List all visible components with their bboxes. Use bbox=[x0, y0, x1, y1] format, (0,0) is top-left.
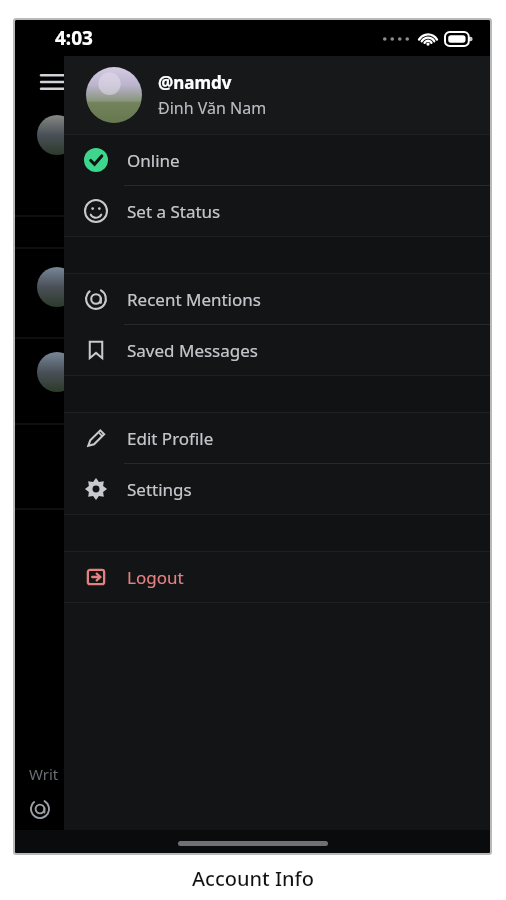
button[interactable]: Edit Profile bbox=[64, 413, 490, 463]
staticText: Writ bbox=[29, 764, 59, 784]
staticText: @namdv bbox=[158, 71, 232, 94]
button[interactable]: Online bbox=[64, 135, 490, 185]
staticText: Set a Status bbox=[127, 200, 221, 223]
staticText: Saved Messages bbox=[127, 339, 258, 362]
staticText: 4:03 bbox=[55, 25, 93, 51]
button[interactable]: Settings bbox=[64, 464, 490, 514]
staticText: Account Info bbox=[192, 865, 314, 892]
staticText: Online bbox=[127, 149, 180, 172]
button[interactable]: Logout bbox=[64, 552, 490, 602]
button[interactable]: @namdv bbox=[64, 56, 490, 134]
staticText: Edit Profile bbox=[127, 427, 214, 450]
staticText: Settings bbox=[127, 478, 192, 501]
staticText: Logout bbox=[127, 566, 184, 589]
button[interactable]: Set a Status bbox=[64, 186, 490, 236]
button[interactable]: Recent Mentions bbox=[64, 274, 490, 324]
staticText: Recent Mentions bbox=[127, 288, 261, 311]
button[interactable]: Menu bbox=[35, 64, 71, 100]
button[interactable]: Saved Messages bbox=[64, 325, 490, 375]
staticText: Đinh Văn Nam bbox=[158, 97, 267, 119]
